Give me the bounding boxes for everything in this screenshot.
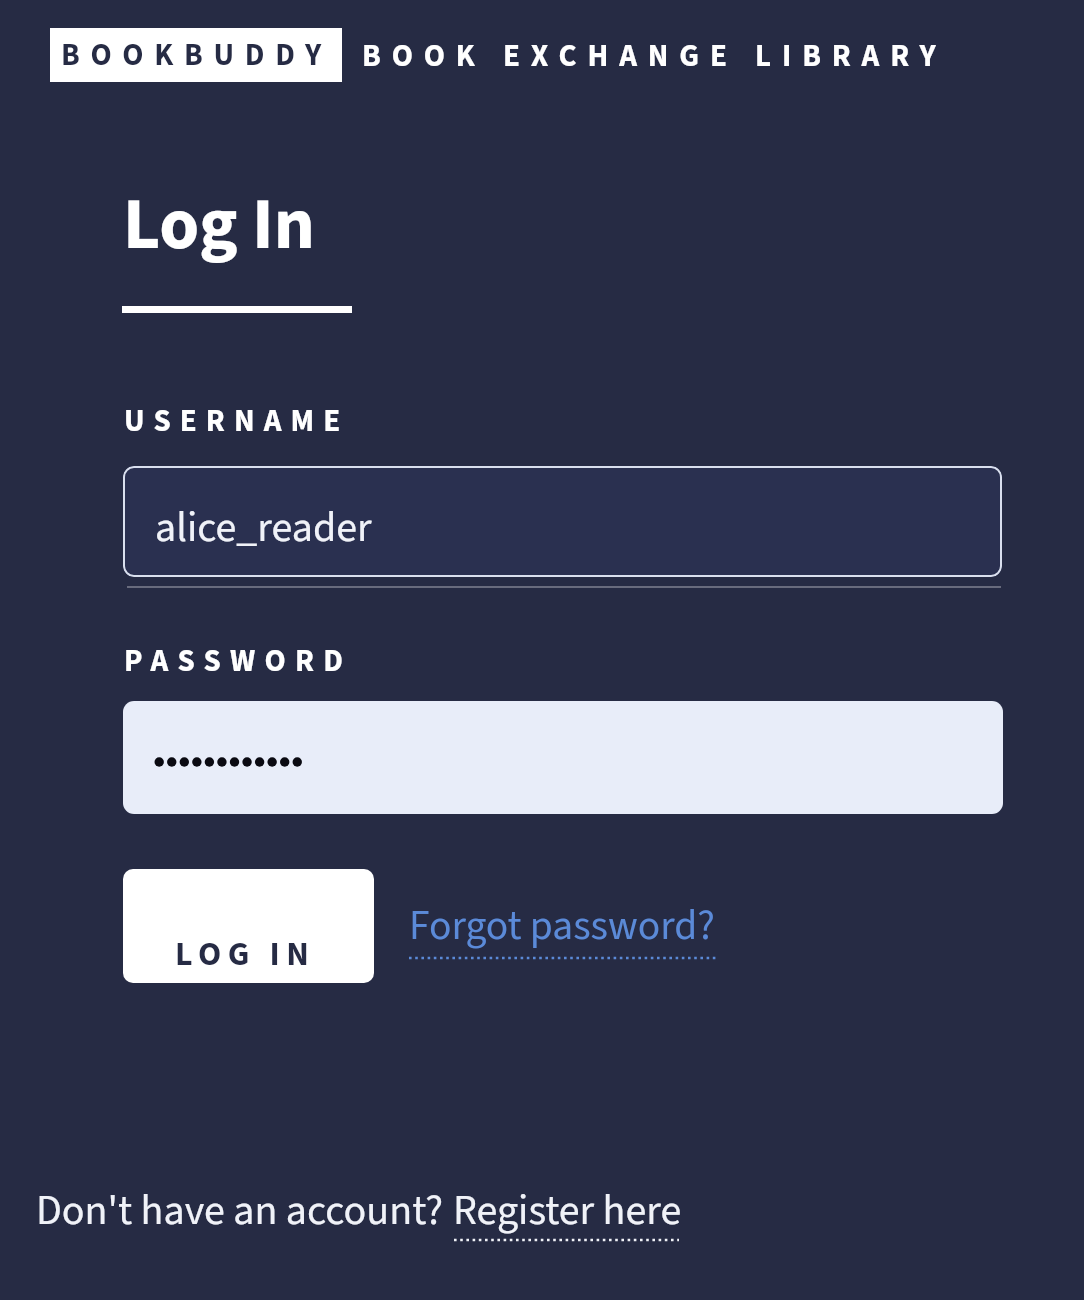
staticText: Forgot password? [409, 897, 715, 956]
button[interactable]: alice_reader [123, 466, 1002, 577]
button[interactable]: Forgot password? [409, 897, 715, 956]
staticText: USERNAME [124, 399, 350, 443]
button[interactable]: LOG IN [123, 869, 374, 983]
staticText: PASSWORD [124, 639, 353, 683]
button[interactable]: BOOKBUDDY [50, 28, 342, 82]
button[interactable]: Register here [453, 1181, 682, 1241]
staticText: alice_reader [155, 498, 372, 558]
staticText: Don't have an account? [36, 1181, 452, 1241]
staticText: BOOK EXCHANGE LIBRARY [362, 34, 947, 78]
staticText: Register here [453, 1181, 682, 1241]
staticText: LOG IN [175, 930, 316, 978]
staticText: Log In [123, 174, 315, 277]
staticText: BOOKBUDDY [61, 33, 332, 77]
button[interactable] [123, 701, 1003, 814]
